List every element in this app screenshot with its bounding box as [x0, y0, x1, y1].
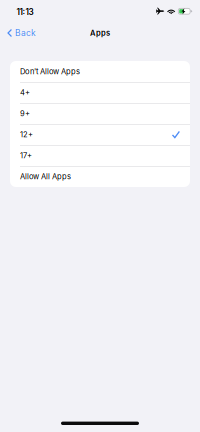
button[interactable]: 12+	[10, 124, 190, 145]
button[interactable]: Allow All Apps	[10, 166, 190, 187]
staticText: Don't Allow Apps	[20, 67, 80, 76]
staticText: 17+	[20, 151, 32, 160]
staticText: Back	[15, 28, 36, 38]
button[interactable]: 9+	[10, 103, 190, 124]
staticText: 11:13	[16, 7, 33, 17]
staticText: 9+	[20, 109, 30, 118]
staticText: Allow All Apps	[20, 172, 71, 181]
button[interactable]: Don't Allow Apps	[10, 61, 190, 82]
button[interactable]: 4+	[10, 82, 190, 103]
staticText: 12+	[20, 130, 33, 139]
staticText: 4+	[20, 88, 30, 97]
button[interactable]: 17+	[10, 145, 190, 166]
button[interactable]: Back	[0, 25, 42, 41]
staticText: Apps	[90, 28, 110, 38]
